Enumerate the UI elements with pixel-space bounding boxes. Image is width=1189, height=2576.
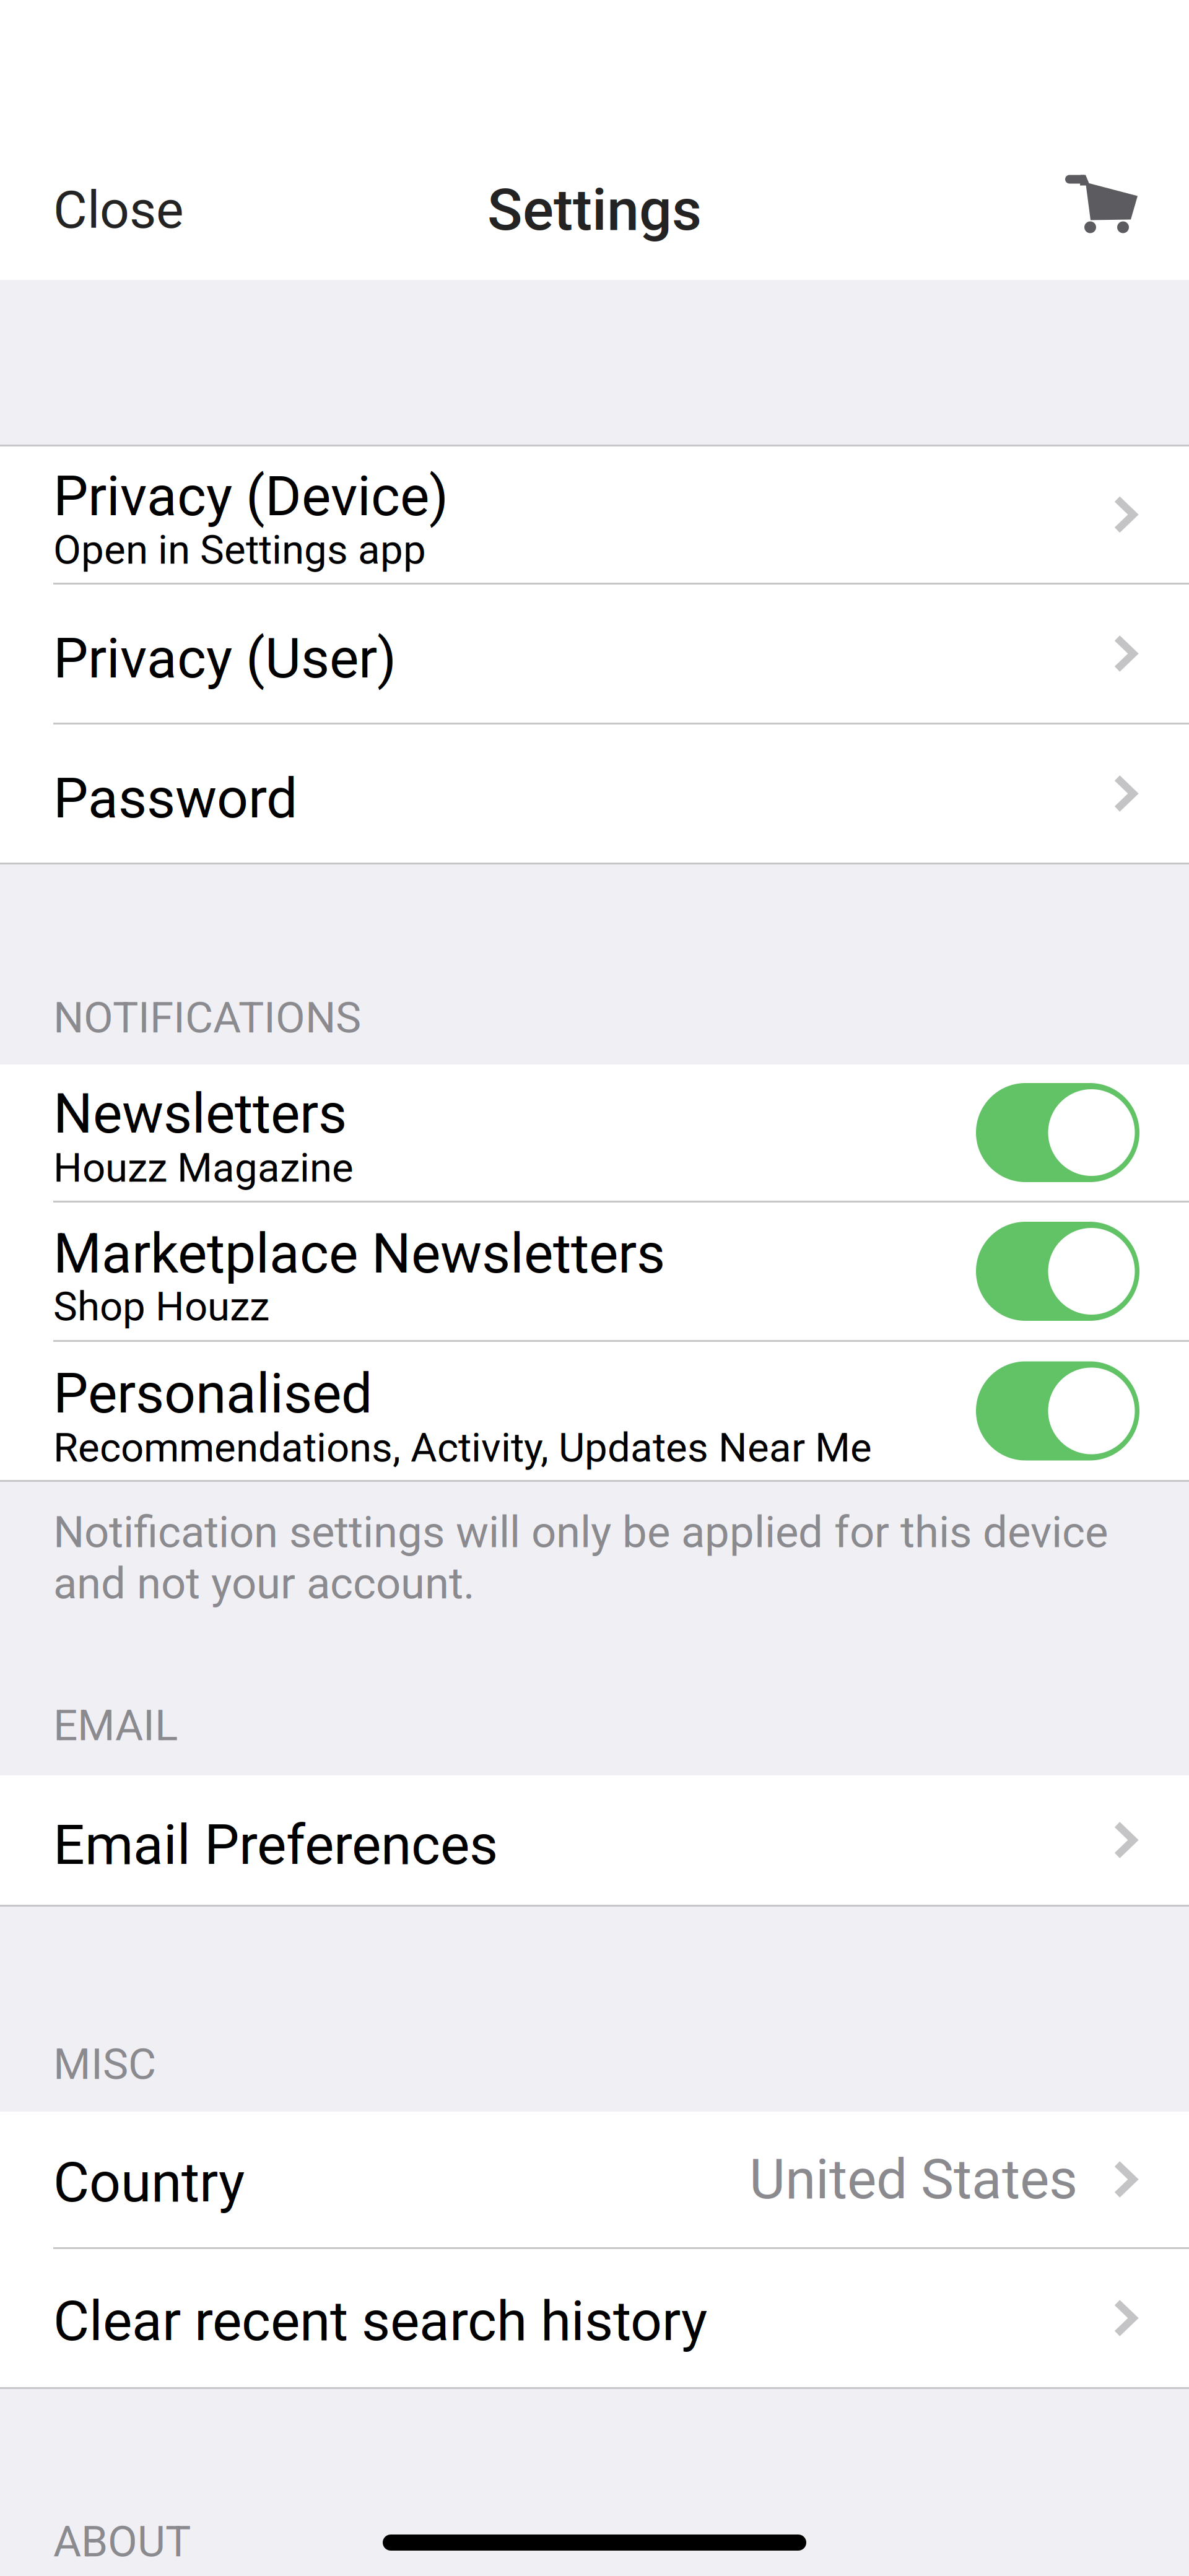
button[interactable]: Clear recent search history xyxy=(0,2249,1189,2387)
staticText: Country xyxy=(53,2150,245,2215)
staticText: Recommendations, Activity, Updates Near … xyxy=(53,1424,872,1471)
staticText: Personalised xyxy=(53,1361,372,1426)
button[interactable]: Personalised xyxy=(0,1342,1189,1480)
staticText: Marketplace Newsletters xyxy=(53,1221,665,1286)
button[interactable]: Close xyxy=(0,155,212,264)
button[interactable]: Password xyxy=(0,724,1189,863)
staticText: Shop Houzz xyxy=(53,1283,269,1330)
button[interactable]: Privacy (User) xyxy=(0,585,1189,723)
button[interactable]: Country xyxy=(0,2112,1189,2247)
staticText: Password xyxy=(53,766,297,831)
button[interactable]: Newsletters xyxy=(0,1064,1189,1201)
staticText: Privacy (User) xyxy=(53,626,396,691)
staticText: EMAIL xyxy=(53,1700,178,1751)
staticText: ABOUT xyxy=(53,2517,191,2567)
staticText: United States xyxy=(749,2147,1078,2212)
staticText: NOTIFICATIONS xyxy=(53,993,361,1043)
staticText: Open in Settings app xyxy=(53,526,426,574)
button[interactable]: Marketplace Newsletters xyxy=(0,1203,1189,1340)
staticText: Clear recent search history xyxy=(53,2289,707,2354)
button[interactable]: Shopping cart xyxy=(1030,155,1189,264)
staticText: Privacy (Device) xyxy=(53,464,448,529)
staticText: Email Preferences xyxy=(53,1812,498,1877)
button[interactable]: Email Preferences xyxy=(0,1775,1189,1905)
staticText: MISC xyxy=(53,2039,156,2089)
staticText: Houzz Magazine xyxy=(53,1144,354,1192)
staticText: Notification settings will only be appli… xyxy=(53,1507,1108,1609)
staticText: Settings xyxy=(487,176,702,244)
staticText: Close xyxy=(53,179,184,240)
button[interactable]: Privacy (Device) xyxy=(0,446,1189,583)
staticText: Newsletters xyxy=(53,1081,347,1146)
